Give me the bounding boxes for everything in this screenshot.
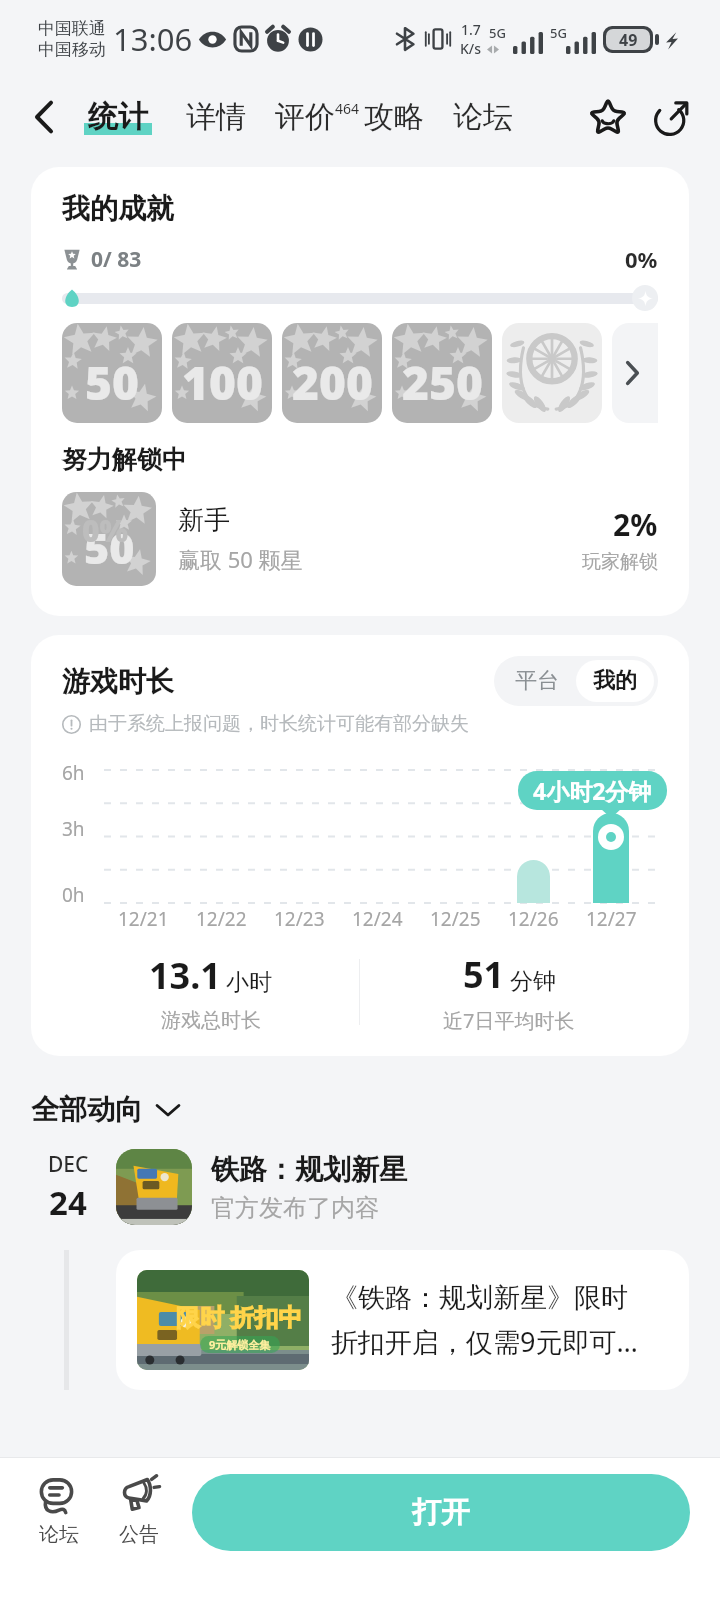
staticText: 200 — [292, 351, 373, 414]
staticText: 0% — [625, 244, 658, 274]
button[interactable]: 论坛 — [453, 98, 513, 136]
button[interactable]: Achievement 50 — [62, 492, 658, 586]
button[interactable]: Achievement 50 — [62, 323, 162, 423]
staticText: 51 — [463, 950, 505, 999]
staticText: 我的成就 — [62, 191, 174, 226]
staticText: 12/25 — [430, 906, 481, 932]
staticText: 0% — [82, 510, 129, 551]
staticText: 新手 — [178, 504, 230, 537]
staticText: 5G — [489, 24, 506, 42]
staticText: 100 — [182, 351, 263, 414]
button[interactable]: Favorite — [584, 93, 632, 141]
button[interactable]: 详情 — [186, 98, 246, 136]
button[interactable]: 公告 — [99, 1474, 179, 1551]
staticText: 464 — [335, 99, 360, 118]
staticText: 0h — [62, 882, 85, 908]
button[interactable]: Wreath achievement — [502, 323, 602, 423]
staticText: 全部动向 — [31, 1092, 143, 1127]
staticText: 赢取 50 颗星 — [178, 544, 303, 574]
button[interactable]: 我的 — [576, 660, 654, 702]
button[interactable]: Achievement 100 — [172, 323, 272, 423]
staticText: 玩家解锁 — [582, 550, 658, 574]
staticText: 250 — [402, 351, 483, 414]
staticText: 打开 — [412, 1494, 470, 1531]
staticText: 6h — [62, 760, 85, 786]
staticText: 中国移动 — [38, 39, 106, 60]
staticText: 攻略 — [364, 98, 424, 136]
staticText: 论坛 — [453, 98, 513, 136]
staticText: 12/21 — [118, 906, 169, 932]
staticText: 分钟 — [510, 967, 556, 996]
button[interactable]: 统计 — [81, 98, 155, 136]
button[interactable]: 评价 — [275, 98, 360, 136]
staticText: 统计 — [88, 98, 148, 136]
staticText: 限时 折扣中 — [176, 1300, 303, 1333]
button[interactable]: 攻略 — [364, 98, 424, 136]
staticText: 12/22 — [196, 906, 247, 932]
staticText: 我的 — [593, 667, 637, 695]
button[interactable]: Back — [21, 94, 67, 140]
staticText: 12/24 — [352, 906, 403, 932]
staticText: 0/ 83 — [91, 245, 142, 274]
button[interactable]: Achievement 50 — [62, 492, 156, 586]
staticText: 13.1 — [149, 951, 221, 1000]
staticText: 官方发布了内容 — [211, 1193, 379, 1223]
staticText: 铁路：规划新星 — [211, 1152, 407, 1187]
staticText: 详情 — [186, 98, 246, 136]
staticText: 12/23 — [274, 906, 325, 932]
staticText: 游戏时长 — [62, 664, 174, 699]
button[interactable]: 全部动向 — [31, 1092, 181, 1127]
staticText: 游戏总时长 — [161, 1008, 261, 1033]
staticText: 评价 — [275, 98, 335, 136]
staticText: 50 — [84, 518, 135, 577]
button[interactable]: More achievements — [612, 323, 658, 423]
staticText: 小时 — [226, 968, 272, 997]
staticText: 公告 — [119, 1522, 159, 1547]
staticText: 1.7 — [461, 20, 481, 39]
staticText: 9元解锁全集 — [209, 1337, 271, 1352]
button[interactable]: Achievement 250 — [392, 323, 492, 423]
staticText: 5G — [550, 24, 567, 42]
staticText: 近7日平均时长 — [443, 1007, 575, 1034]
staticText: 由于系统上报问题，时长统计可能有部分缺失 — [89, 712, 469, 736]
button[interactable]: Achievement 200 — [282, 323, 382, 423]
staticText: 努力解锁中 — [62, 444, 187, 475]
staticText: 3h — [62, 816, 85, 842]
staticText: 平台 — [515, 667, 559, 695]
staticText: K/s — [460, 39, 482, 58]
staticText: 50 — [85, 351, 139, 414]
staticText: 49 — [619, 29, 638, 50]
button[interactable]: Share — [648, 93, 696, 141]
button[interactable]: 限时 折扣中 — [116, 1250, 689, 1390]
staticText: 2% — [613, 504, 658, 545]
staticText: DEC — [48, 1150, 89, 1179]
button[interactable]: 平台 — [498, 660, 576, 702]
button[interactable]: 论坛 — [19, 1474, 99, 1551]
staticText: 论坛 — [39, 1522, 79, 1547]
staticText: 《铁路：规划新星》限时折扣开启，仅需9元即可… — [331, 1281, 649, 1360]
staticText: 13:06 — [113, 18, 193, 60]
staticText: 24 — [49, 1180, 87, 1225]
staticText: 中国联通 — [38, 18, 106, 39]
staticText: 4小时2分钟 — [533, 775, 652, 806]
staticText: 12/27 — [586, 906, 637, 932]
staticText: 12/26 — [508, 906, 559, 932]
button[interactable]: 打开 — [192, 1474, 690, 1551]
